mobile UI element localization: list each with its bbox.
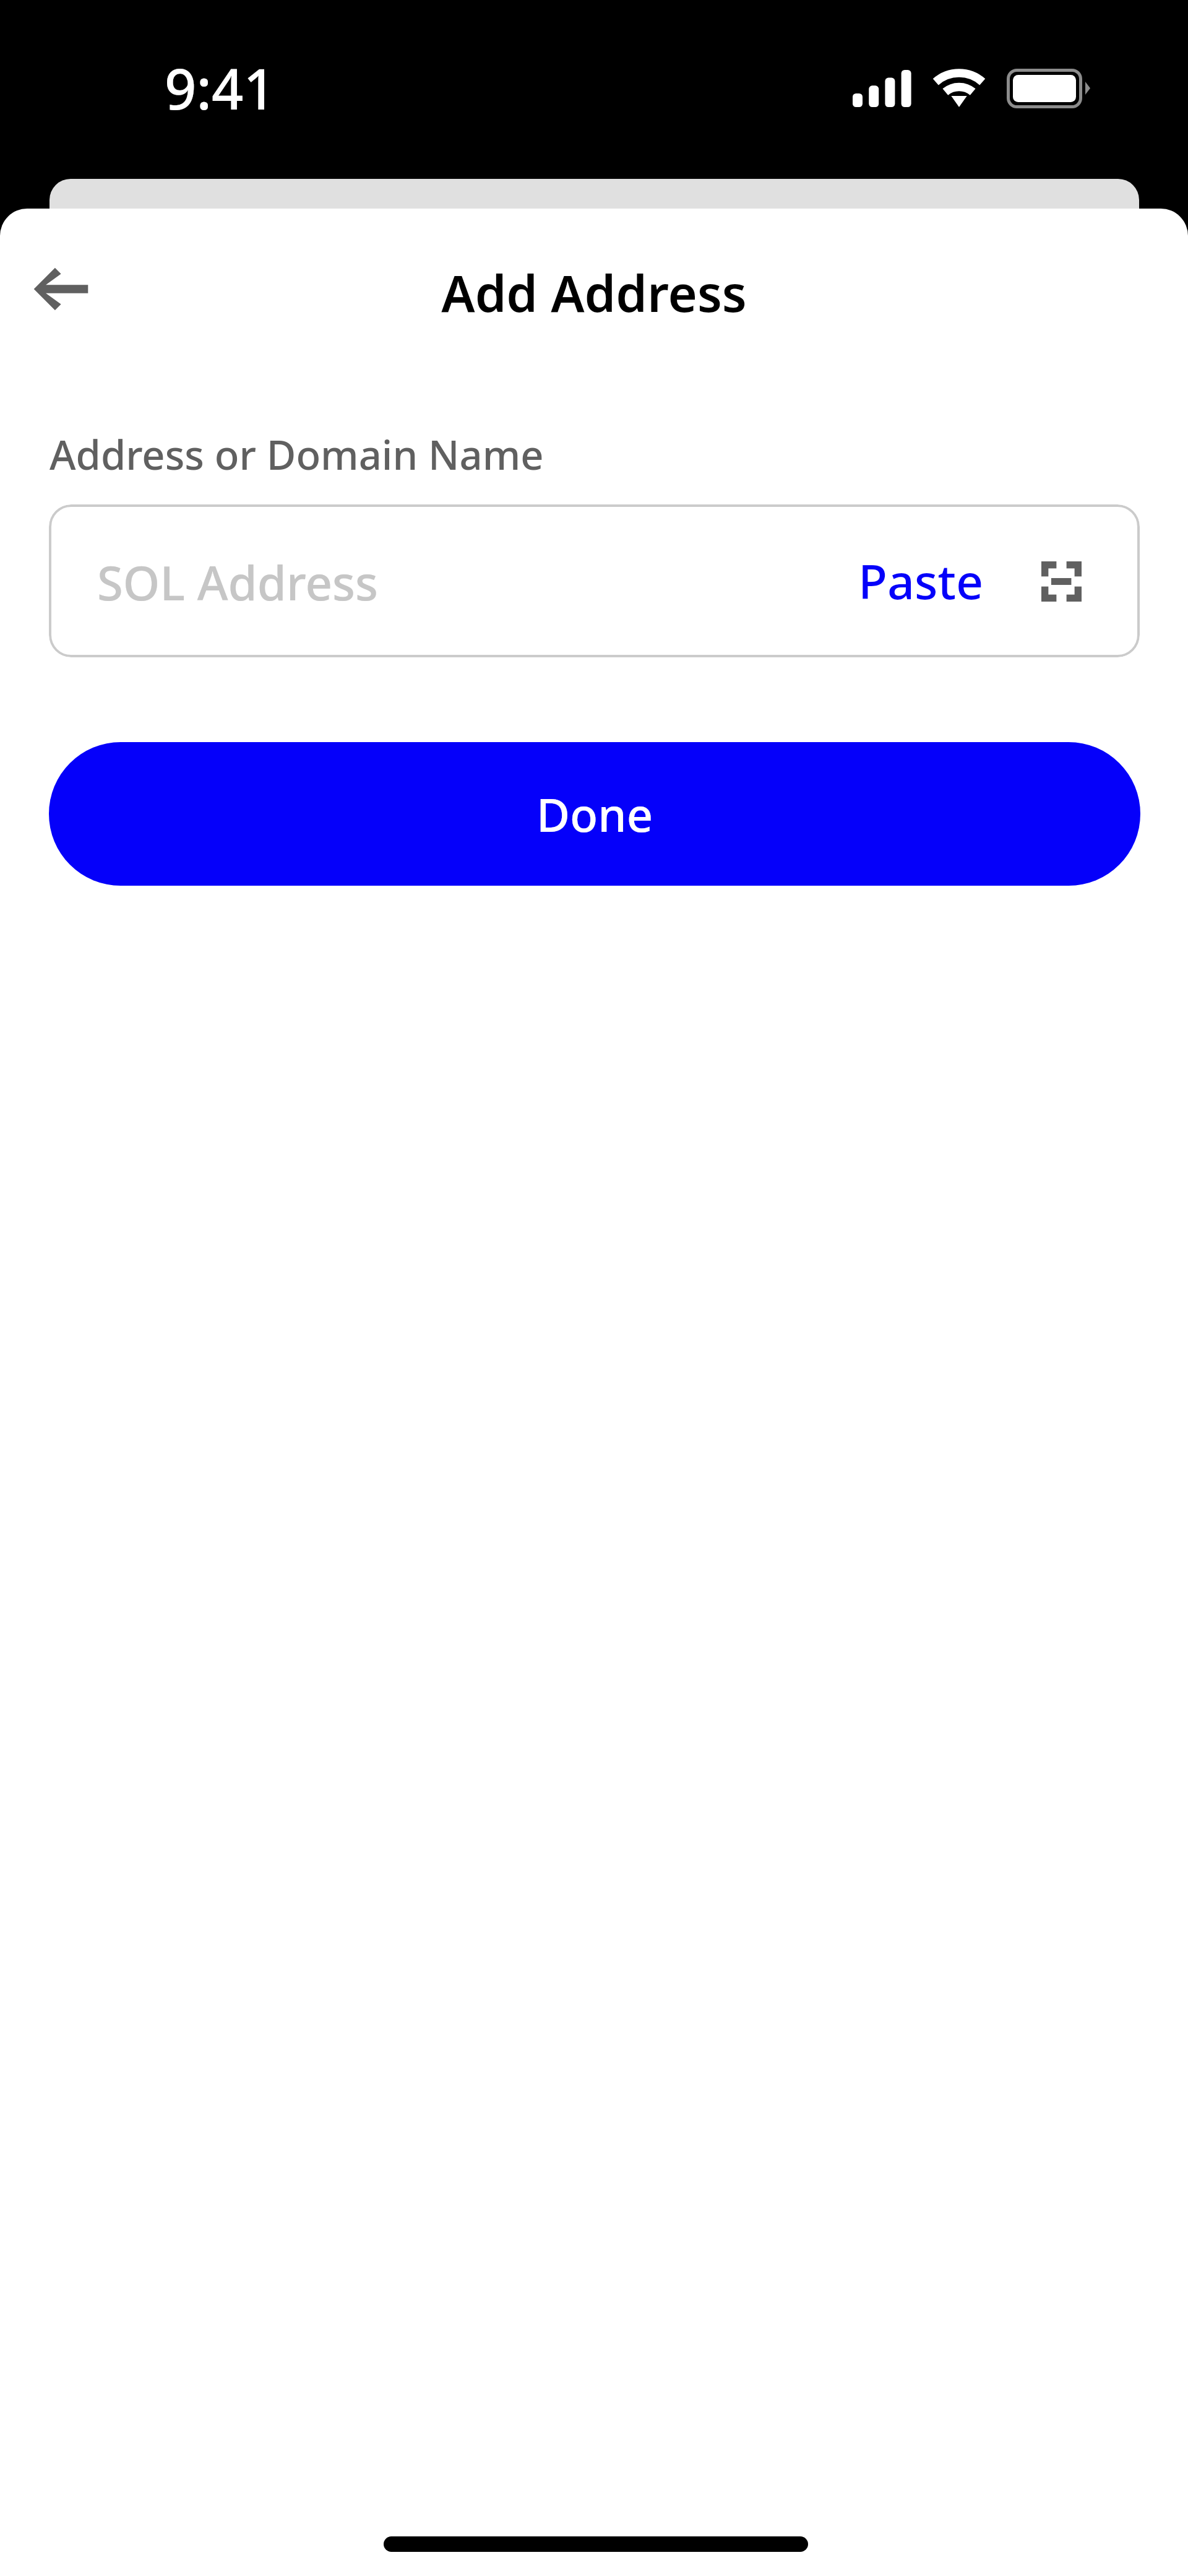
staticText: Address or Domain Name [49, 427, 544, 482]
button[interactable]: Scan QR code [1020, 540, 1103, 623]
staticText: 9:41 [165, 50, 275, 126]
button[interactable]: Paste [838, 527, 1003, 635]
staticText: Done [536, 783, 653, 845]
staticText: Paste [858, 548, 984, 613]
button[interactable]: SOL Address [49, 504, 1140, 657]
button[interactable]: Done [49, 742, 1140, 886]
button[interactable]: Back [25, 253, 97, 325]
staticText: SOL Address [97, 550, 378, 615]
staticText: Add Address [0, 258, 1188, 326]
